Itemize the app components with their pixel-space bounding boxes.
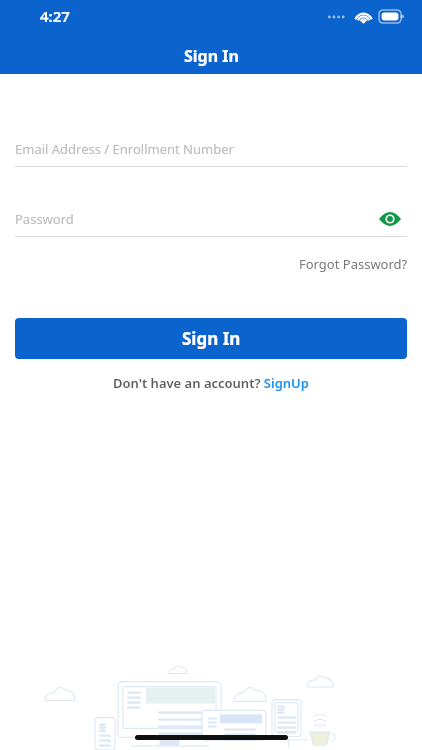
button[interactable]: Don't have an account? SignUp xyxy=(109,370,313,396)
button[interactable]: Sign In xyxy=(15,318,407,359)
button[interactable]: Forgot Password? xyxy=(285,250,422,278)
staticText: Don't have an account? SignUp xyxy=(113,374,309,392)
staticText: Email Address / Enrollment Number xyxy=(15,140,234,158)
button[interactable]: Email Address / Enrollment Number xyxy=(15,132,407,166)
staticText: Sign In xyxy=(182,327,241,350)
staticText: 4:27 xyxy=(40,6,70,26)
button[interactable]: Show password xyxy=(373,202,407,236)
staticText: Forgot Password? xyxy=(299,255,408,273)
staticText: Password xyxy=(15,210,74,228)
button[interactable]: Password xyxy=(15,202,407,236)
staticText: Sign In xyxy=(184,45,239,67)
